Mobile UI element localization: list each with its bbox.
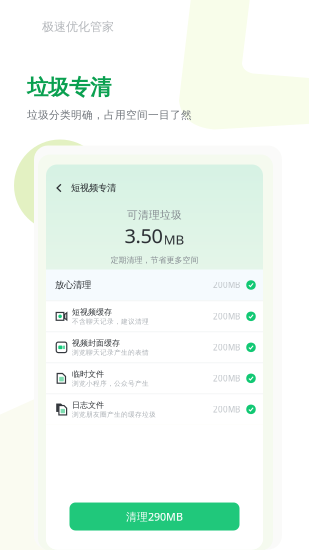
staticText: 放心清理 — [55, 279, 91, 291]
staticText: 可清理垃圾 — [127, 208, 182, 221]
staticText: 200MB — [213, 280, 240, 290]
staticText: 200MB — [213, 373, 240, 384]
staticText: 短视频专清 — [71, 182, 116, 194]
staticText: 200MB — [213, 404, 240, 415]
staticText: 定期清理，节省更多空间 — [110, 255, 198, 265]
staticText: 垃圾分类明确，占用空间一目了然 — [27, 108, 192, 121]
button[interactable]: 视频封面缓存 — [46, 331, 263, 362]
staticText: 垃圾专清 — [27, 74, 111, 100]
staticText: 视频封面缓存 — [72, 338, 120, 348]
button[interactable]: 短视频缓存 — [46, 300, 263, 331]
staticText: 临时文件 — [72, 369, 104, 379]
staticText: 极速优化管家 — [42, 19, 114, 34]
staticText: 浏览朋友圈产生的缓存垃圾 — [72, 410, 156, 419]
staticText: 浏览聊天记录产生的表情 — [72, 348, 149, 357]
staticText: MB — [163, 231, 184, 248]
staticText: 日志文件 — [72, 400, 104, 410]
staticText: 3.50 — [124, 222, 162, 249]
button[interactable]: 日志文件 — [46, 393, 263, 424]
staticText: 200MB — [213, 342, 240, 353]
staticText: 清理290MB — [126, 509, 183, 524]
button[interactable]: 临时文件 — [46, 362, 263, 393]
staticText: 浏览小程序，公众号产生 — [72, 379, 149, 388]
staticText: 短视频缓存 — [72, 307, 112, 317]
staticText: 200MB — [213, 311, 240, 322]
button[interactable]: 返回 — [52, 179, 66, 197]
button[interactable]: 清理290MB — [69, 502, 239, 530]
staticText: 不含聊天记录，建议清理 — [72, 317, 149, 326]
